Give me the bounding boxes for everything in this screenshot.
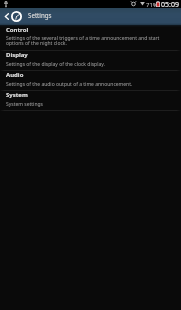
button[interactable]: Back [0, 8, 181, 25]
button[interactable]: Control [0, 25, 181, 50]
other: Back [5, 13, 9, 20]
button[interactable]: Display [0, 51, 181, 70]
staticText: System [6, 92, 28, 99]
staticText: Control [6, 27, 29, 34]
staticText: Settings [28, 11, 52, 19]
button[interactable]: System [0, 91, 181, 110]
staticText: 71% [146, 1, 158, 9]
staticText: Settings of the several triggers of a ti… [6, 35, 161, 47]
staticText: 05:09 [161, 0, 179, 8]
button[interactable]: Audio [0, 71, 181, 90]
staticText: Settings of the audio output of a time a… [6, 81, 133, 88]
staticText: Display [6, 52, 28, 59]
staticText: System settings [6, 101, 43, 108]
staticText: Audio [6, 72, 24, 79]
staticText: Settings of the display of the clock dis… [6, 61, 105, 68]
